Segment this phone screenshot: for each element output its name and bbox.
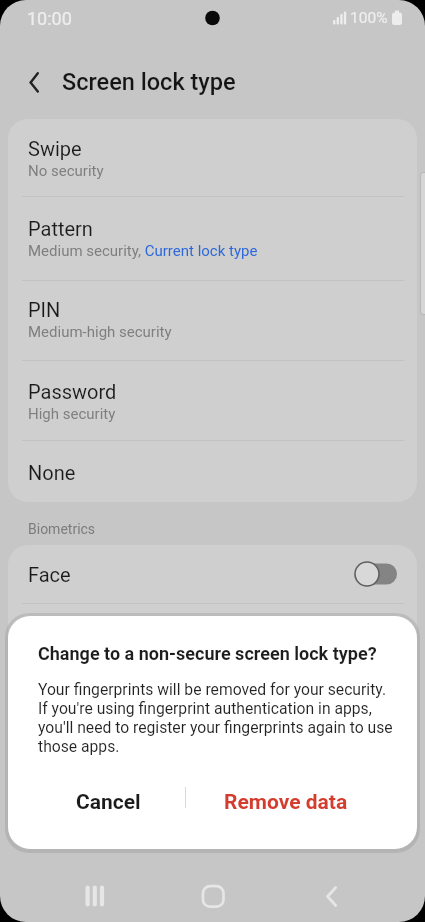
staticText: Screen lock type: [62, 68, 236, 96]
staticText: Password: [28, 380, 117, 403]
staticText: PIN: [28, 298, 61, 321]
staticText: No security: [28, 162, 104, 180]
staticText: Face: [28, 563, 355, 586]
staticText: High security: [28, 405, 116, 423]
button[interactable]: Swipe: [8, 119, 417, 196]
staticText: Swipe: [28, 137, 82, 160]
button[interactable]: Remove data: [208, 782, 363, 822]
staticText: None: [28, 461, 76, 484]
staticText: Cancel: [76, 790, 141, 815]
button[interactable]: Password: [8, 361, 417, 440]
staticText: Medium security, Current lock type: [28, 242, 258, 260]
button[interactable]: Pattern: [8, 197, 417, 280]
button[interactable]: [51, 870, 103, 922]
staticText: Pattern: [28, 217, 93, 240]
button[interactable]: None: [8, 441, 417, 502]
staticText: Change to a non-secure screen lock type?: [38, 643, 377, 664]
staticText: 10:00: [27, 8, 72, 29]
button[interactable]: [323, 870, 375, 922]
staticText: Medium-high security: [28, 323, 172, 341]
button[interactable]: Face: [8, 545, 417, 603]
staticText: 100%: [350, 9, 388, 27]
button[interactable]: Cancel: [51, 782, 166, 822]
button[interactable]: PIN: [8, 281, 417, 360]
staticText: Remove data: [224, 790, 348, 815]
button[interactable]: [20, 60, 64, 104]
staticText: Biometrics: [28, 521, 96, 537]
staticText: Your fingerprints will be removed for yo…: [38, 680, 393, 756]
button[interactable]: [187, 870, 239, 922]
